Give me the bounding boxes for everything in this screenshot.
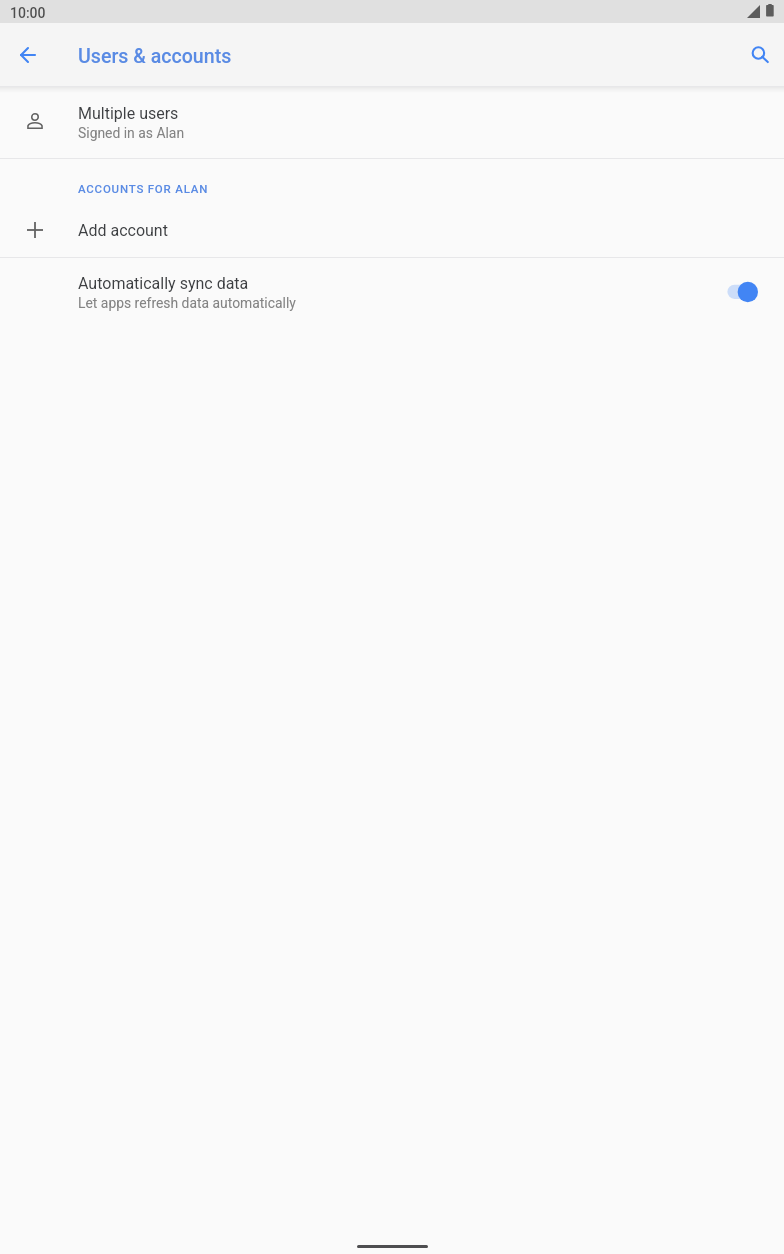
staticText: Add account <box>78 221 168 240</box>
staticText: Signed in as Alan <box>78 125 185 141</box>
button[interactable]: Back <box>6 33 50 77</box>
staticText: Automatically sync data <box>78 274 249 293</box>
button[interactable]: Search <box>738 32 782 76</box>
staticText: Users & accounts <box>78 45 232 68</box>
staticText: 10:00 <box>10 5 46 21</box>
staticText: Let apps refresh data automatically <box>78 295 296 311</box>
button[interactable]: Automatically sync data toggle <box>718 276 766 308</box>
button[interactable]: Multiple users <box>0 87 784 158</box>
staticText: ACCOUNTS FOR ALAN <box>78 182 209 195</box>
button[interactable]: Home <box>0 1214 784 1254</box>
button[interactable]: Automatically sync data <box>0 258 784 324</box>
button[interactable]: Add account <box>0 210 784 257</box>
staticText: Multiple users <box>78 104 179 123</box>
